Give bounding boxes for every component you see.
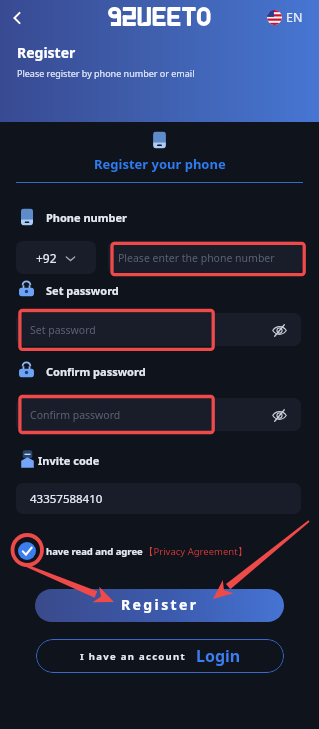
- staticText: Set password: [30, 323, 96, 337]
- button[interactable]: Back: [4, 5, 30, 31]
- button[interactable]: Set password: [16, 313, 301, 346]
- button[interactable]: I have an account: [36, 639, 284, 673]
- staticText: Login: [196, 645, 241, 667]
- staticText: EN: [286, 9, 303, 26]
- staticText: Register: [17, 43, 76, 62]
- staticText: Please register by phone number or email: [17, 67, 195, 79]
- button[interactable]: Register your phone: [94, 155, 226, 173]
- staticText: Please enter the phone number: [118, 251, 275, 265]
- staticText: Phone number: [46, 210, 127, 225]
- staticText: Register: [121, 595, 199, 614]
- button[interactable]: 43357588410: [16, 483, 301, 514]
- staticText: 【Privacy Agreement】: [144, 545, 248, 558]
- button[interactable]: Show password: [268, 319, 290, 341]
- staticText: Confirm password: [30, 408, 121, 422]
- staticText: +92: [36, 250, 57, 266]
- staticText: Confirm password: [46, 364, 146, 379]
- button[interactable]: have read and agree: [18, 541, 248, 561]
- staticText: Invite code: [38, 453, 100, 468]
- button[interactable]: Confirm password: [16, 398, 301, 431]
- staticText: I have an account: [80, 650, 186, 663]
- staticText: 43357588410: [30, 491, 103, 507]
- button[interactable]: 92JEETO: [108, 7, 206, 26]
- button[interactable]: EN: [267, 9, 303, 26]
- button[interactable]: Register: [35, 589, 284, 622]
- staticText: have read and agree: [46, 545, 143, 558]
- button[interactable]: Show password: [268, 404, 290, 426]
- button[interactable]: Please enter the phone number: [108, 241, 302, 274]
- button[interactable]: +92: [16, 241, 96, 274]
- staticText: Set password: [46, 283, 119, 298]
